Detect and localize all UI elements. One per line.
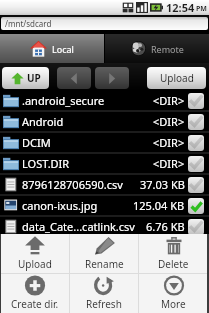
button[interactable]: Create dir.	[1, 274, 69, 313]
staticText: <DIR>	[153, 135, 185, 150]
staticText: canon-ixus.jpg	[22, 198, 133, 213]
staticText: UP	[27, 71, 41, 85]
staticText: <DIR>	[153, 156, 185, 171]
button[interactable]: Remote	[105, 34, 209, 63]
button[interactable]: canon-ixus.jpg	[0, 196, 209, 215]
staticText: Rename	[85, 257, 124, 271]
staticText: Android	[22, 114, 153, 129]
button[interactable]: Rename	[70, 234, 138, 273]
button[interactable]: data_Cate...catlink.csv	[0, 217, 209, 236]
staticText: 6.76 KB	[146, 219, 185, 234]
button[interactable]: 8796128706590.csv	[0, 175, 209, 194]
staticText: /mnt/sdcard	[5, 18, 52, 29]
button[interactable]: Select .android_secure	[188, 93, 204, 109]
button[interactable]: Select Android	[188, 114, 204, 130]
button[interactable]: Delete	[139, 234, 207, 273]
button[interactable]: .android_secure	[0, 91, 209, 110]
button[interactable]: Upload	[147, 67, 206, 89]
staticText: <DIR>	[153, 114, 185, 129]
button[interactable]: Select LOST.DIR	[188, 156, 204, 172]
button[interactable]: Select canon-ixus.jpg	[188, 198, 204, 214]
staticText: PM	[196, 4, 207, 14]
button[interactable]: Back	[57, 67, 91, 89]
staticText: 125.04 KB	[133, 198, 185, 213]
button[interactable]: Local	[0, 34, 104, 63]
staticText: Local	[52, 43, 74, 55]
button[interactable]: LOST.DIR	[0, 154, 209, 173]
staticText: DCIM	[22, 135, 153, 150]
button[interactable]: Upload	[1, 234, 69, 273]
staticText: Refresh	[86, 297, 122, 311]
staticText: 12:54	[166, 0, 195, 15]
staticText: 8796128706590.csv	[22, 177, 140, 192]
staticText: data_Cate...catlink.csv	[22, 219, 146, 234]
button[interactable]: Select DCIM	[188, 135, 204, 151]
button[interactable]: DCIM	[0, 133, 209, 152]
button[interactable]: Forward	[95, 67, 129, 89]
staticText: .android_secure	[22, 93, 153, 108]
button[interactable]: More	[139, 274, 207, 313]
staticText: Create dir.	[11, 297, 59, 311]
staticText: Upload	[160, 71, 194, 85]
button[interactable]: Refresh	[70, 274, 138, 313]
button[interactable]: /mnt/sdcard	[1, 17, 208, 30]
button[interactable]: UP	[2, 67, 49, 89]
staticText: Delete	[158, 257, 189, 271]
button[interactable]: Select 8796128706590.csv	[188, 177, 204, 193]
button[interactable]: Android	[0, 112, 209, 131]
staticText: More	[161, 297, 186, 311]
staticText: Upload	[18, 257, 52, 271]
staticText: <DIR>	[153, 93, 185, 108]
button[interactable]: Select data_Cate...catlink.csv	[188, 219, 204, 235]
staticText: 37.03 KB	[140, 177, 185, 192]
staticText: LOST.DIR	[22, 156, 153, 171]
staticText: Remote	[151, 43, 184, 55]
